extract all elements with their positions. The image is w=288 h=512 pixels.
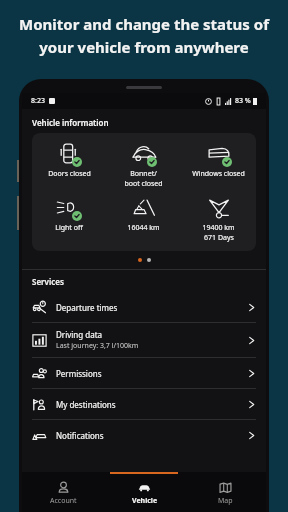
button[interactable]: Doors closed: [32, 141, 106, 179]
staticText: Monitor and change the status of: [19, 14, 269, 34]
staticText: Doors closed: [48, 169, 91, 179]
staticText: Notifications: [56, 430, 104, 441]
button[interactable]: Departure times: [22, 292, 266, 322]
staticText: boot closed: [124, 179, 163, 189]
staticText: 19400 km: [202, 223, 235, 233]
button[interactable]: Light off: [32, 195, 106, 233]
staticText: 83 %: [235, 96, 251, 106]
staticText: Driving data: [56, 329, 103, 340]
button[interactable]: Permissions: [22, 358, 266, 388]
button[interactable]: 16044 km: [106, 195, 181, 233]
staticText: Departure times: [56, 302, 118, 313]
staticText: your vehicle from anywhere: [39, 37, 249, 57]
staticText: Light off: [55, 223, 83, 233]
button[interactable]: Bonnet/: [106, 141, 181, 189]
staticText: Last journey: 3,7 l/100km: [56, 341, 139, 351]
staticText: Bonnet/: [130, 169, 157, 179]
button[interactable]: Notifications: [22, 420, 266, 450]
button[interactable]: Map: [185, 474, 266, 512]
staticText: My destinations: [56, 399, 116, 410]
button[interactable]: My destinations: [22, 389, 266, 419]
button[interactable]: Vehicle: [104, 474, 185, 512]
button[interactable]: Windows closed: [181, 141, 256, 179]
staticText: Vehicle: [132, 496, 158, 506]
staticText: Services: [32, 276, 64, 287]
staticText: 8:23: [31, 96, 45, 106]
button[interactable]: 19400 km: [181, 195, 256, 243]
staticText: Windows closed: [192, 169, 245, 179]
staticText: 16044 km: [127, 223, 160, 233]
staticText: 671 Days: [204, 233, 234, 243]
button[interactable]: Driving data: [22, 323, 266, 357]
staticText: Account: [50, 496, 77, 506]
staticText: Map: [218, 496, 233, 506]
staticText: Permissions: [56, 368, 102, 379]
staticText: Vehicle information: [32, 117, 109, 128]
button[interactable]: Account: [22, 474, 104, 512]
